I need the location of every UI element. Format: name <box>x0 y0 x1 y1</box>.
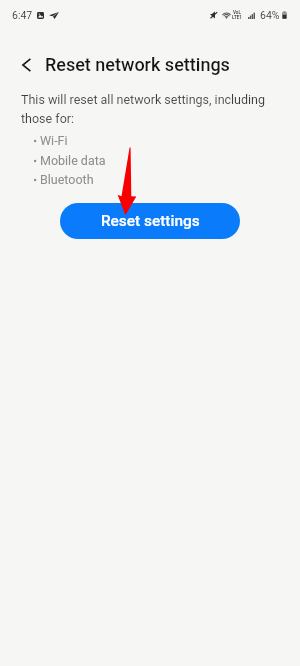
staticText: Wi-Fi <box>40 133 68 148</box>
staticText: Mobile data <box>40 153 106 168</box>
staticText: LTE1 <box>232 15 242 20</box>
staticText: 64% <box>260 9 280 21</box>
staticText: Reset settings <box>101 212 200 230</box>
staticText: Bluetooth <box>40 172 94 187</box>
staticText: Reset network settings <box>45 54 230 75</box>
button[interactable]: Reset settings <box>60 203 240 239</box>
staticText: This will reset all network settings, in… <box>21 92 273 126</box>
staticText: VoL <box>233 10 241 15</box>
button[interactable]: Navigate up <box>9 48 43 82</box>
staticText: 6:47 <box>12 9 33 21</box>
